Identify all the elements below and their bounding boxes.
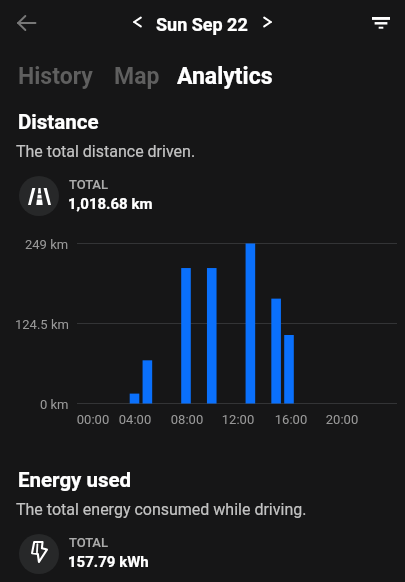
staticText: 12:00 <box>213 412 263 427</box>
staticText: Distance <box>18 110 99 134</box>
staticText: 0 km <box>40 397 69 412</box>
staticText: The total energy consumed while driving. <box>16 500 307 519</box>
staticText: History <box>18 63 93 90</box>
staticText: 20:00 <box>317 412 367 427</box>
staticText: The total distance driven. <box>16 142 196 161</box>
button[interactable]: Analytics <box>177 63 273 90</box>
staticText: TOTAL <box>69 177 108 192</box>
staticText: Energy used <box>18 468 132 492</box>
staticText: Map <box>114 63 160 90</box>
staticText: 157.79 kWh <box>68 553 149 571</box>
staticText: 1,018.68 km <box>68 195 153 213</box>
button[interactable]: Back <box>5 1 48 44</box>
staticText: Sun Sep 22 <box>156 14 248 35</box>
staticText: 124.5 km <box>15 317 69 332</box>
staticText: 16:00 <box>266 412 316 427</box>
staticText: 249 km <box>25 237 69 252</box>
staticText: 08:00 <box>162 412 212 427</box>
staticText: Analytics <box>177 63 273 90</box>
button[interactable]: Filter <box>360 1 402 43</box>
button[interactable]: Previous day <box>126 6 148 38</box>
button[interactable]: History <box>18 63 93 90</box>
button[interactable]: Next day <box>256 6 278 38</box>
staticText: 00:00 <box>68 412 118 427</box>
button[interactable]: Map <box>114 63 160 90</box>
staticText: 04:00 <box>110 412 160 427</box>
staticText: TOTAL <box>69 535 108 550</box>
